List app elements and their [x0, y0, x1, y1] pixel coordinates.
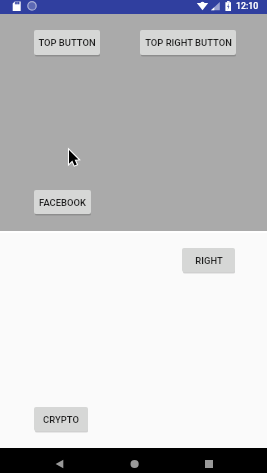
staticText: 12:10 [236, 1, 259, 11]
button[interactable]: TOP RIGHT BUTTON [140, 30, 236, 58]
staticText: FACEBOOK [39, 197, 86, 208]
button[interactable]: Recent apps [185, 448, 233, 473]
button[interactable]: Home [110, 448, 158, 473]
staticText: CRYPTO [43, 414, 79, 425]
staticText: RIGHT [195, 255, 223, 266]
button[interactable]: RIGHT [182, 248, 235, 275]
staticText: TOP BUTTON [38, 37, 96, 48]
button[interactable]: TOP BUTTON [34, 30, 100, 58]
button[interactable]: FACEBOOK [34, 190, 91, 217]
staticText: TOP RIGHT BUTTON [145, 37, 232, 48]
button[interactable]: Back [40, 448, 88, 473]
button[interactable]: CRYPTO [34, 407, 88, 434]
